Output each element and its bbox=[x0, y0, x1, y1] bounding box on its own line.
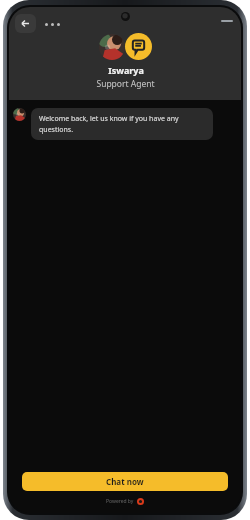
button[interactable]: Chat now bbox=[22, 472, 228, 491]
staticText: Chat now bbox=[106, 476, 144, 487]
staticText: Support Agent bbox=[96, 78, 155, 90]
button[interactable]: Welcome back, let us know if you have an… bbox=[31, 108, 213, 140]
staticText: Powered by bbox=[106, 498, 134, 505]
staticText: Iswarya bbox=[108, 64, 144, 76]
staticText: Welcome back, let us know if you have an… bbox=[39, 114, 205, 134]
button[interactable]: More options bbox=[42, 20, 63, 29]
other: Chat bbox=[125, 33, 152, 60]
button[interactable]: Back bbox=[15, 14, 36, 33]
